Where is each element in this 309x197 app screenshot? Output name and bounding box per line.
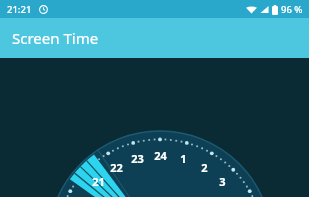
button[interactable]: Screen Time: [0, 18, 309, 58]
staticText: Screen Time: [12, 28, 99, 48]
staticText: 21: [92, 174, 105, 188]
staticText: 1: [180, 151, 187, 165]
staticText: 96 %: [281, 3, 303, 16]
button[interactable]: Screen time clock dial: [0, 58, 309, 197]
staticText: 24: [154, 148, 167, 162]
staticText: 22: [110, 160, 123, 174]
staticText: 21:21: [7, 3, 32, 16]
staticText: 23: [131, 151, 144, 165]
staticText: 2: [201, 160, 208, 174]
staticText: 3: [219, 174, 226, 188]
